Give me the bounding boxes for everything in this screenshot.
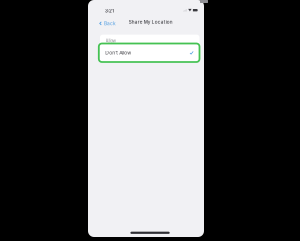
button[interactable]: Don't Allow [99,43,199,62]
staticText: Back [104,20,116,26]
staticText: Don't Allow [105,50,131,56]
staticText: Share My Location [129,19,173,25]
staticText: Allow [106,38,116,43]
staticText: 3:21 [105,8,114,14]
button[interactable]: Back [98,19,117,28]
